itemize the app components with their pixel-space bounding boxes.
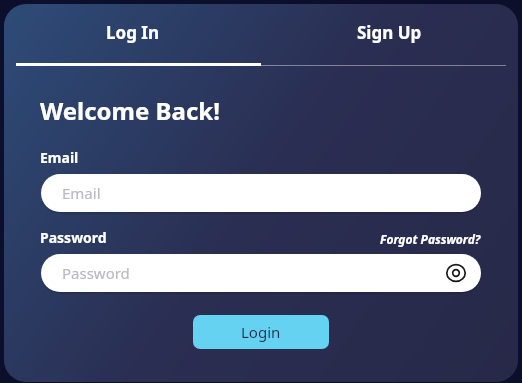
staticText: Welcome Back! xyxy=(40,94,220,127)
button[interactable]: Email xyxy=(41,174,481,212)
staticText: Forgot Password? xyxy=(380,231,481,247)
staticText: Email xyxy=(40,148,79,167)
staticText: Password xyxy=(62,263,130,283)
button[interactable]: Sign Up xyxy=(261,4,518,66)
button[interactable]: Log In xyxy=(4,4,261,66)
staticText: Login xyxy=(241,322,281,342)
button[interactable]: Password xyxy=(41,254,481,292)
staticText: Sign Up xyxy=(357,21,422,44)
staticText: Email xyxy=(62,183,101,203)
button[interactable]: Login xyxy=(193,315,329,349)
button[interactable]: Show password xyxy=(443,260,469,286)
button[interactable]: Forgot Password? xyxy=(380,231,481,247)
staticText: Password xyxy=(40,228,107,247)
staticText: Log In xyxy=(106,21,159,44)
